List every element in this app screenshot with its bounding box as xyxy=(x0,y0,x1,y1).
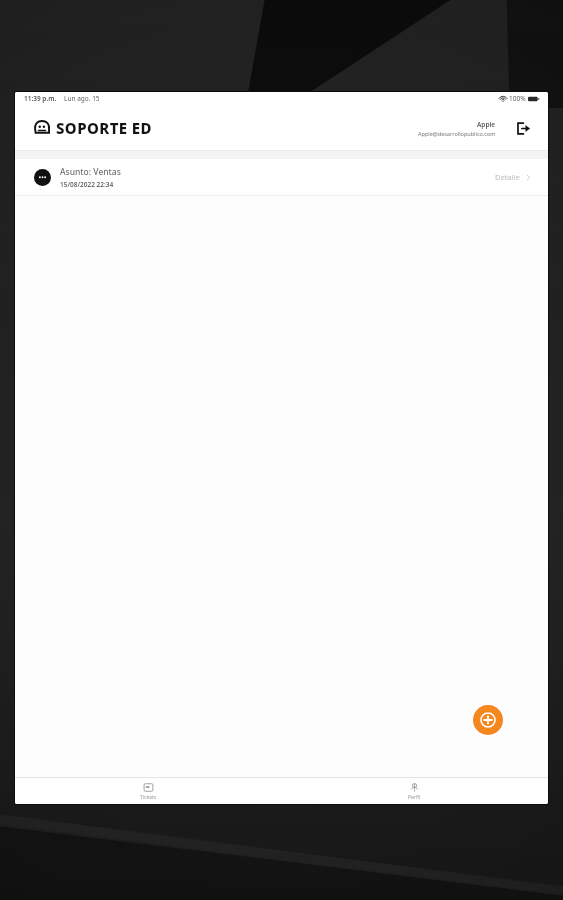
staticText: Tickets xyxy=(140,794,157,801)
button[interactable]: Perfil xyxy=(281,778,548,804)
button[interactable]: Asunto: Ventas xyxy=(15,159,548,195)
button[interactable]: Nuevo ticket xyxy=(473,705,503,735)
staticText: 100% xyxy=(509,94,526,103)
staticText: Apple@desarrollopublico.com xyxy=(418,130,496,137)
button[interactable]: Tickets xyxy=(15,778,281,804)
staticText: Apple xyxy=(477,120,496,129)
staticText: Asunto: Ventas xyxy=(60,166,121,178)
staticText: Detalle xyxy=(495,172,520,182)
staticText: SOPORTE ED xyxy=(56,118,152,138)
staticText: 15/08/2022 22:34 xyxy=(60,180,114,189)
staticText: Perfil xyxy=(408,794,421,801)
staticText: Lun ago. 15 xyxy=(64,94,100,103)
button[interactable]: Cerrar sesión xyxy=(510,116,534,140)
staticText: 11:39 p.m. xyxy=(24,94,57,103)
